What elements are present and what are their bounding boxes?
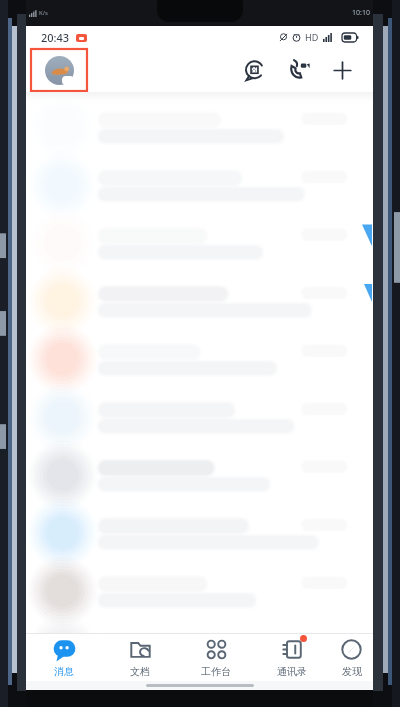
button[interactable]: Profile <box>30 48 88 92</box>
button[interactable]: Scan QR code <box>235 51 273 89</box>
button[interactable]: 通讯录 <box>254 634 330 681</box>
staticText: 工作台 <box>201 665 231 678</box>
button[interactable]: 工作台 <box>178 634 254 681</box>
staticText: K/s <box>39 9 48 17</box>
staticText: 通讯录 <box>277 665 307 678</box>
staticText: 20:43 <box>41 30 70 45</box>
button[interactable]: Add <box>323 51 361 89</box>
staticText: 文档 <box>130 665 150 678</box>
button[interactable]: 发现 <box>330 634 373 681</box>
staticText: 10:10 <box>352 8 370 18</box>
button[interactable]: 文档 <box>102 634 178 681</box>
staticText: 发现 <box>342 665 362 678</box>
button[interactable]: 消息 <box>26 634 102 681</box>
staticText: HD <box>305 31 319 43</box>
button[interactable]: Call <box>279 51 317 89</box>
staticText: 消息 <box>54 665 74 678</box>
